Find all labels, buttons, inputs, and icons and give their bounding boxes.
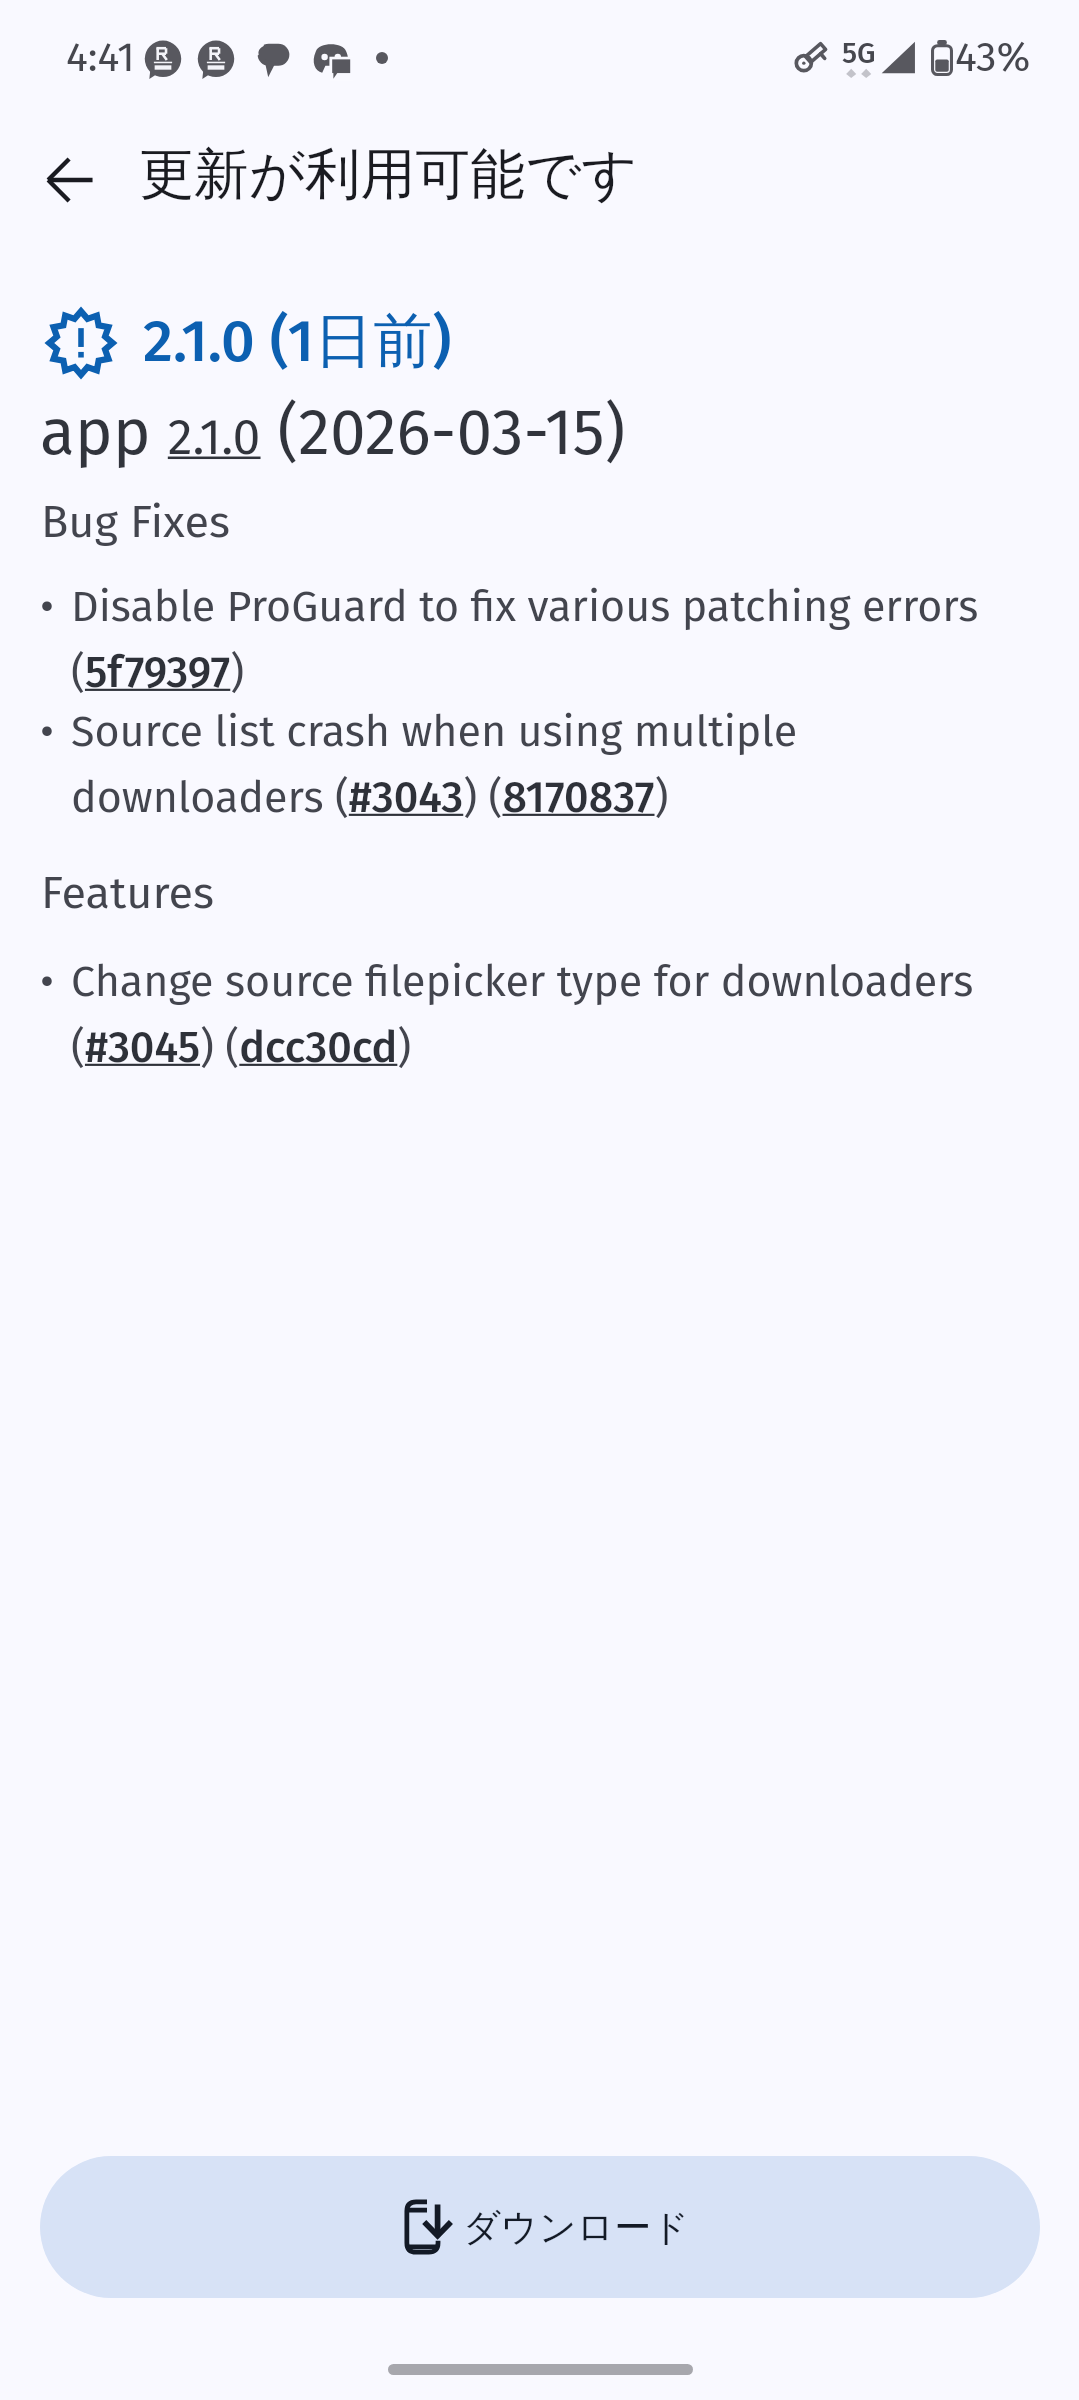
staticText: Change source filepicker type for downlo… [71,956,986,1073]
staticText: ダウンロード [463,2204,690,2251]
staticText: 更新が利用可能です [139,140,638,209]
staticText: 5G [842,36,876,71]
staticText: 4:41 [66,33,135,82]
staticText: Bug Fixes [41,495,231,549]
staticText: app 2.1.0 (2026-03-15) [40,394,626,471]
staticText: Features [41,866,215,920]
staticText: • [40,581,54,633]
staticText: Source list crash when using multiple do… [71,706,986,823]
button[interactable]: ダウンロード [40,2156,1040,2298]
staticText: Disable ProGuard to fix various patching… [71,581,986,698]
staticText: • [40,706,54,758]
staticText: 2.1.0 (1日前) [143,304,452,378]
staticText: • [40,956,54,1008]
staticText: 43% [955,33,1031,82]
button[interactable]: Back [26,136,114,224]
